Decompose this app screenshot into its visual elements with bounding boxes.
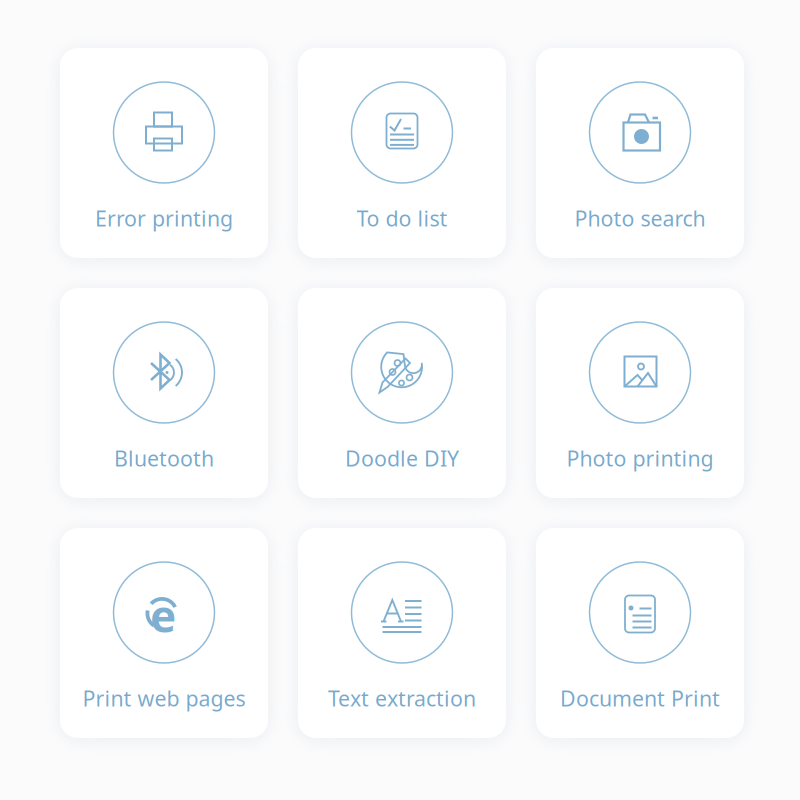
staticText: Document Print bbox=[560, 684, 720, 712]
staticText: To do list bbox=[356, 204, 447, 232]
staticText: Print web pages bbox=[82, 684, 245, 712]
staticText: Error printing bbox=[95, 204, 233, 232]
staticText: Photo printing bbox=[566, 444, 713, 472]
button[interactable]: e bbox=[60, 528, 268, 738]
staticText: Text extraction bbox=[328, 684, 476, 712]
button[interactable]: Document Print bbox=[536, 528, 744, 738]
button[interactable]: Error printing bbox=[60, 48, 268, 258]
button[interactable]: Photo printing bbox=[536, 288, 744, 498]
button[interactable]: Text extraction bbox=[298, 528, 506, 738]
button[interactable]: To do list bbox=[298, 48, 506, 258]
staticText: Photo search bbox=[574, 204, 705, 232]
staticText: e bbox=[150, 586, 176, 645]
button[interactable]: Photo search bbox=[536, 48, 744, 258]
staticText: Doodle DIY bbox=[345, 444, 459, 472]
button[interactable]: Bluetooth bbox=[60, 288, 268, 498]
button[interactable]: Doodle DIY bbox=[298, 288, 506, 498]
staticText: Bluetooth bbox=[114, 444, 214, 472]
